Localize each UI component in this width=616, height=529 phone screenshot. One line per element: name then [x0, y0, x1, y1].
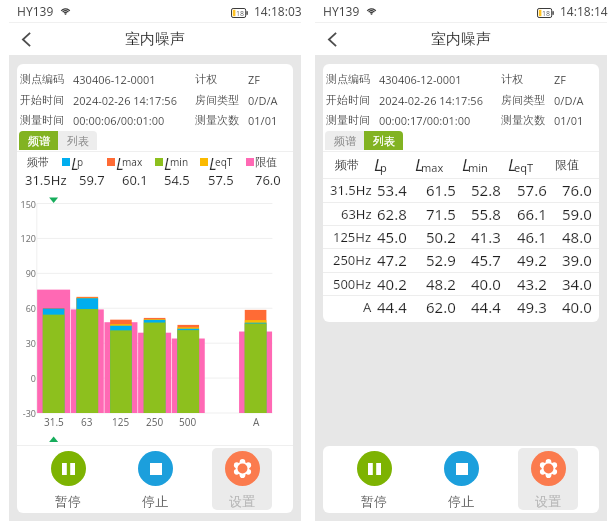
button[interactable] [518, 448, 578, 510]
button[interactable]: 列表 [364, 131, 403, 150]
staticText: 频谱 [334, 134, 356, 148]
staticText: 46.1 [517, 227, 547, 247]
staticText: 0/D/A [554, 93, 584, 107]
staticText: HY139 [17, 3, 54, 19]
staticText: 48.0 [562, 227, 592, 247]
staticText: 44.4 [377, 297, 407, 317]
staticText: 54.5 [164, 171, 190, 189]
staticText: 40.2 [377, 274, 407, 294]
staticText: 62.8 [377, 204, 407, 224]
staticText: 62.0 [426, 297, 456, 317]
staticText: L [374, 153, 383, 176]
staticText: p [380, 160, 387, 175]
staticText: 48.2 [426, 274, 456, 294]
staticText: 250 [146, 415, 164, 429]
staticText: 55.8 [471, 204, 501, 224]
button[interactable]: 频谱 [19, 131, 58, 150]
staticText: 开始时间 [20, 93, 64, 107]
staticText: 125 [112, 415, 130, 429]
staticText: 66.1 [517, 204, 547, 224]
button[interactable]: 125Hz [323, 226, 599, 248]
staticText: 频谱 [28, 134, 50, 148]
staticText: 停止 [448, 493, 474, 508]
staticText: 30 [25, 337, 36, 349]
button[interactable] [212, 448, 272, 510]
staticText: 31.5 [44, 415, 64, 429]
staticText: 125Hz [333, 228, 372, 246]
staticText: 0/D/A [248, 93, 278, 107]
button[interactable]: 设置 [518, 448, 578, 510]
staticText: 测量时间 [20, 113, 64, 127]
staticText: 500Hz [333, 275, 372, 293]
staticText: 500 [179, 415, 197, 429]
button[interactable]: 停止 [125, 448, 185, 510]
staticText: ZF [554, 72, 567, 86]
staticText: 00:00:17/00:01:00 [379, 113, 471, 127]
staticText: 室内噪声 [125, 30, 185, 49]
staticText: 49.2 [517, 250, 547, 270]
staticText: 60.1 [122, 171, 148, 189]
staticText: 57.5 [208, 171, 234, 189]
staticText: L [508, 153, 517, 176]
staticText: 计权 [501, 72, 523, 86]
staticText: 测量时间 [326, 113, 370, 127]
staticText: 90 [25, 267, 36, 279]
staticText: max [122, 155, 143, 169]
staticText: 0 [30, 372, 36, 384]
button[interactable]: 250Hz [323, 249, 599, 271]
button[interactable]: 63Hz [323, 203, 599, 225]
staticText: 测点编码 [326, 72, 370, 86]
staticText: min [468, 160, 488, 175]
staticText: 61.5 [426, 180, 456, 200]
button[interactable]: 暂停 [38, 448, 98, 510]
button[interactable]: 设置 [212, 448, 272, 510]
staticText: 设置 [229, 493, 255, 508]
button[interactable]: 列表 [58, 131, 97, 150]
staticText: 测点编码 [20, 72, 64, 86]
staticText: 430406-12-0001 [379, 72, 462, 86]
staticText: 限值 [555, 157, 579, 172]
staticText: min [170, 155, 189, 169]
staticText: 76.0 [562, 180, 592, 200]
staticText: 01/01 [248, 113, 278, 127]
staticText: 250Hz [333, 251, 372, 269]
button[interactable]: 31.5Hz [323, 179, 599, 201]
staticText: 150 [20, 198, 36, 210]
staticText: A [253, 415, 260, 429]
staticText: 50.2 [426, 227, 456, 247]
button[interactable]: 500Hz [323, 273, 599, 295]
staticText: 测量次数 [195, 113, 239, 127]
staticText: 14:18:03 [254, 3, 302, 19]
staticText: 01/01 [554, 113, 584, 127]
staticText: max [421, 160, 444, 175]
staticText: 52.9 [426, 250, 456, 270]
staticText: 430406-12-0001 [73, 72, 156, 86]
staticText: L [164, 153, 172, 170]
staticText: 开始时间 [326, 93, 370, 107]
staticText: 18 [236, 9, 244, 18]
staticText: 52.8 [471, 180, 501, 200]
staticText: 列表 [67, 134, 89, 148]
staticText: eqT [215, 155, 233, 169]
staticText: 45.0 [377, 227, 407, 247]
button[interactable]: 频谱 [325, 131, 364, 150]
button[interactable]: A [323, 296, 599, 318]
staticText: 59.0 [562, 204, 592, 224]
staticText: 49.3 [517, 297, 547, 317]
staticText: 53.4 [377, 180, 407, 200]
staticText: 限值 [255, 155, 277, 169]
staticText: L [462, 153, 471, 176]
staticText: 45.7 [471, 250, 501, 270]
staticText: ZF [248, 72, 261, 86]
button[interactable]: Back [10, 23, 42, 55]
staticText: 60 [25, 302, 36, 314]
staticText: A [363, 298, 372, 316]
staticText: 测量次数 [501, 113, 545, 127]
button[interactable]: 停止 [431, 448, 491, 510]
staticText: HY139 [323, 3, 360, 19]
staticText: 2024-02-26 14:17:56 [379, 93, 483, 107]
button[interactable]: 暂停 [344, 448, 404, 510]
button[interactable]: Back [316, 23, 348, 55]
staticText: 34.0 [562, 274, 592, 294]
staticText: 40.0 [562, 297, 592, 317]
